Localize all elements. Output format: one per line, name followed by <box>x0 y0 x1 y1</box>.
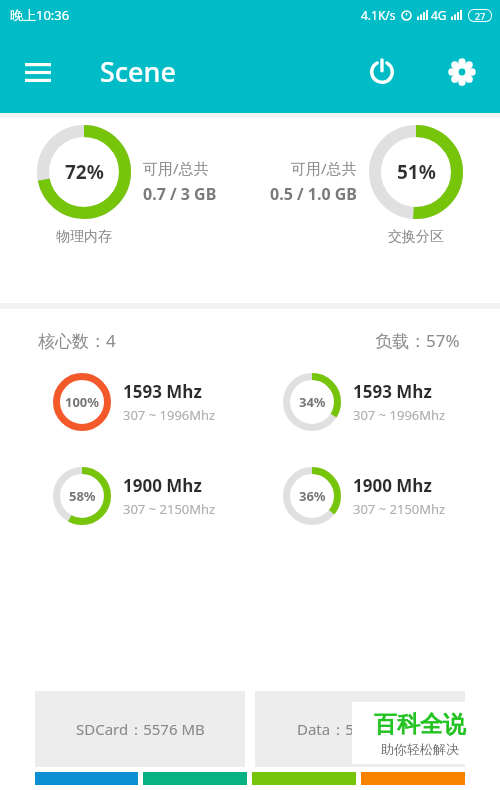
staticText: 34% <box>299 393 326 411</box>
button[interactable]: Data：5 <box>255 691 465 767</box>
staticText: 307 ~ 1996Mhz <box>123 406 216 424</box>
staticText: SDCard：5576 MB <box>76 719 205 739</box>
staticText: Scene <box>100 53 177 90</box>
staticText: 1900 Mhz <box>353 474 432 497</box>
staticText: 晚上10:36 <box>10 6 70 24</box>
button[interactable]: SDCard：5576 MB <box>35 691 245 767</box>
staticText: 可用/总共 <box>291 158 357 178</box>
staticText: 72% <box>65 159 104 185</box>
button[interactable]: 72% <box>0 125 250 246</box>
button[interactable]: 36% <box>283 467 500 525</box>
staticText: 1593 Mhz <box>123 380 202 403</box>
button[interactable]: Settings <box>437 47 487 97</box>
button[interactable]: 34% <box>283 373 500 431</box>
staticText: 1900 Mhz <box>123 474 202 497</box>
staticText: 百科全说 <box>374 710 466 739</box>
staticText: 物理内存 <box>56 228 112 246</box>
button[interactable]: 58% <box>53 467 283 525</box>
staticText: 1593 Mhz <box>353 380 432 403</box>
staticText: 0.5 / 1.0 GB <box>270 183 357 205</box>
button[interactable]: Menu <box>12 46 64 98</box>
staticText: 36% <box>299 487 326 505</box>
staticText: 4.1K/s <box>361 7 396 23</box>
staticText: 307 ~ 2150Mhz <box>353 500 446 518</box>
staticText: 58% <box>69 487 96 505</box>
staticText: 51% <box>397 159 436 185</box>
staticText: 交换分区 <box>388 228 444 246</box>
staticText: 4G <box>431 7 447 23</box>
button[interactable]: 100% <box>53 373 283 431</box>
staticText: 0.7 / 3 GB <box>143 183 217 205</box>
button[interactable]: Power <box>357 47 407 97</box>
staticText: 核心数：4 <box>38 329 116 352</box>
staticText: 307 ~ 1996Mhz <box>353 406 446 424</box>
staticText: 可用/总共 <box>143 158 209 178</box>
staticText: Data：5 <box>297 719 354 739</box>
staticText: 助你轻松解决 <box>381 741 459 757</box>
staticText: 307 ~ 2150Mhz <box>123 500 216 518</box>
staticText: 100% <box>65 393 100 411</box>
staticText: 27 <box>475 10 486 21</box>
staticText: 负载：57% <box>375 329 460 352</box>
button[interactable]: 可用/总共 <box>250 125 500 246</box>
